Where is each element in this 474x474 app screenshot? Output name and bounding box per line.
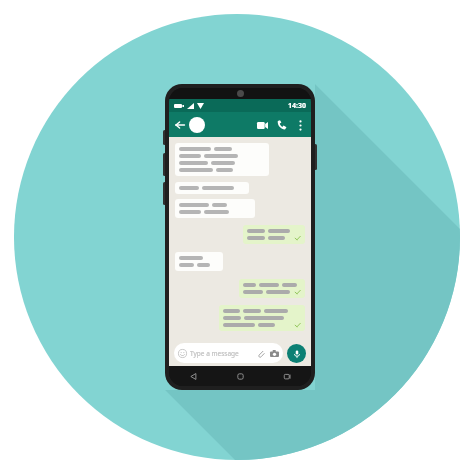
button[interactable] [243, 225, 305, 244]
button[interactable]: Camera [269, 348, 279, 358]
staticText: 14:30 [288, 101, 306, 111]
button[interactable] [219, 305, 305, 331]
button[interactable] [239, 279, 305, 298]
button[interactable] [175, 252, 223, 271]
button[interactable]: Contact avatar [189, 117, 205, 133]
button[interactable]: Call [275, 118, 289, 132]
button[interactable]: Video call [255, 118, 269, 132]
button[interactable]: Type a message [174, 343, 283, 363]
button[interactable]: Attach file [256, 349, 265, 358]
staticText: Type a message [190, 349, 239, 358]
button[interactable]: Back [169, 366, 217, 386]
button[interactable]: Back [174, 119, 186, 131]
button[interactable]: Recent apps [264, 366, 311, 386]
button[interactable] [175, 199, 255, 218]
button[interactable]: Home [217, 366, 264, 386]
button[interactable]: More options [294, 119, 306, 131]
button[interactable] [175, 182, 249, 194]
button[interactable] [175, 143, 269, 176]
button[interactable]: Record voice message [287, 344, 306, 363]
